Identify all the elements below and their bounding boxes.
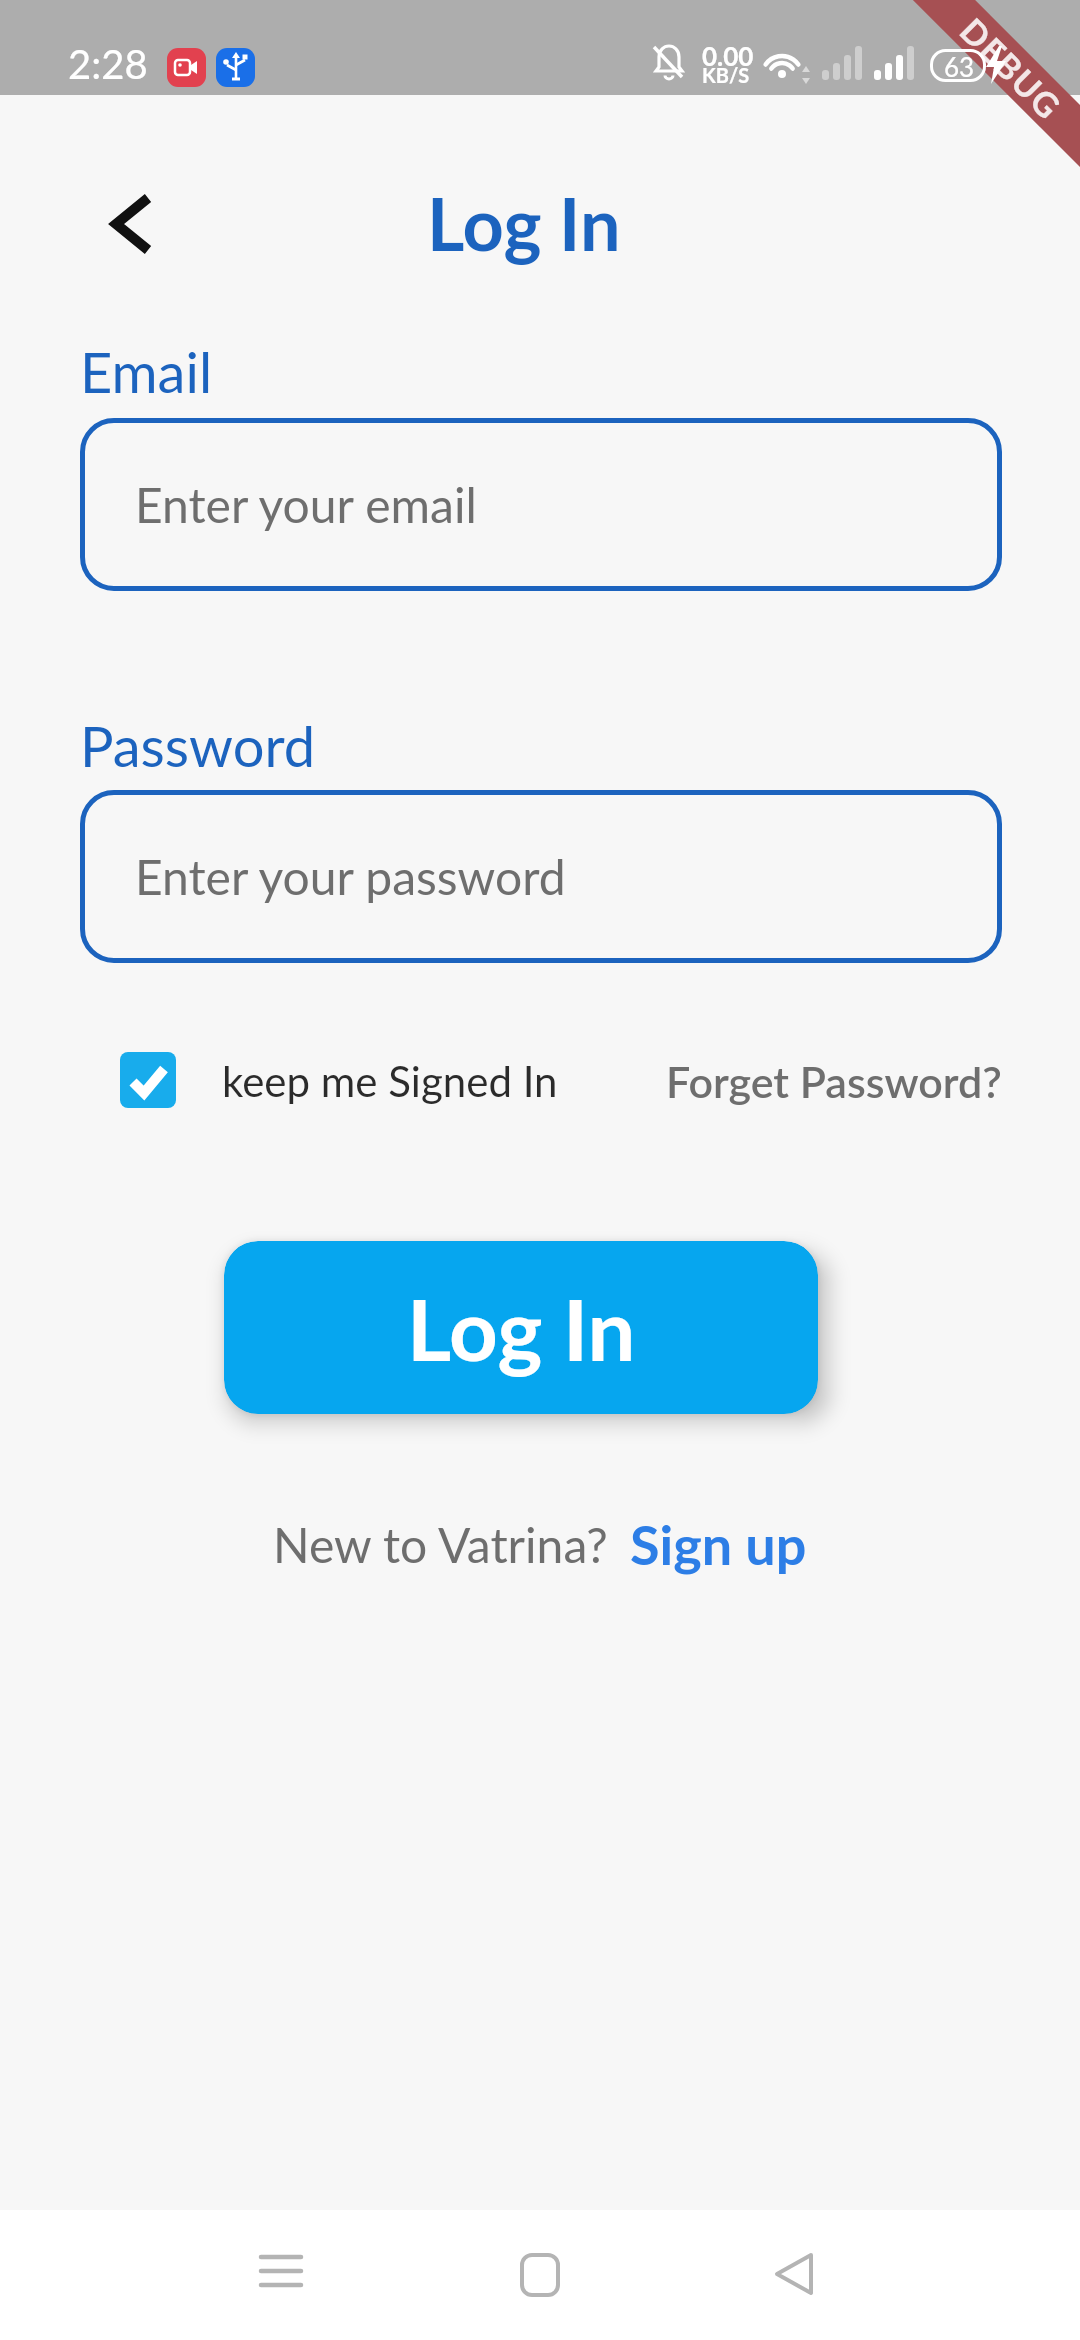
- staticText: Enter your email: [135, 476, 477, 534]
- button[interactable]: [520, 2253, 564, 2297]
- staticText: 0.00: [702, 40, 754, 71]
- button[interactable]: [775, 2253, 819, 2297]
- staticText: DEBUG: [953, 9, 1071, 127]
- staticText: Log In: [407, 1277, 636, 1379]
- staticText: Password: [80, 712, 316, 779]
- staticText: Email: [80, 338, 213, 405]
- button[interactable]: [261, 2253, 305, 2297]
- staticText: KB/S: [702, 63, 750, 87]
- staticText: New to Vatrina?: [273, 1516, 608, 1574]
- staticText: keep me Signed In: [222, 1056, 558, 1106]
- button[interactable]: Forget Password?: [666, 1056, 1002, 1108]
- button[interactable]: [100, 190, 170, 260]
- staticText: 2:28: [68, 40, 148, 88]
- staticText: Enter your password: [135, 848, 566, 906]
- staticText: 63: [944, 51, 975, 82]
- staticText: Log In: [427, 180, 621, 266]
- button[interactable]: [120, 1052, 176, 1108]
- button[interactable]: Enter your password: [80, 790, 1002, 963]
- button[interactable]: Log In: [224, 1241, 818, 1414]
- button[interactable]: Enter your email: [80, 418, 1002, 591]
- button[interactable]: Sign up: [630, 1512, 807, 1577]
